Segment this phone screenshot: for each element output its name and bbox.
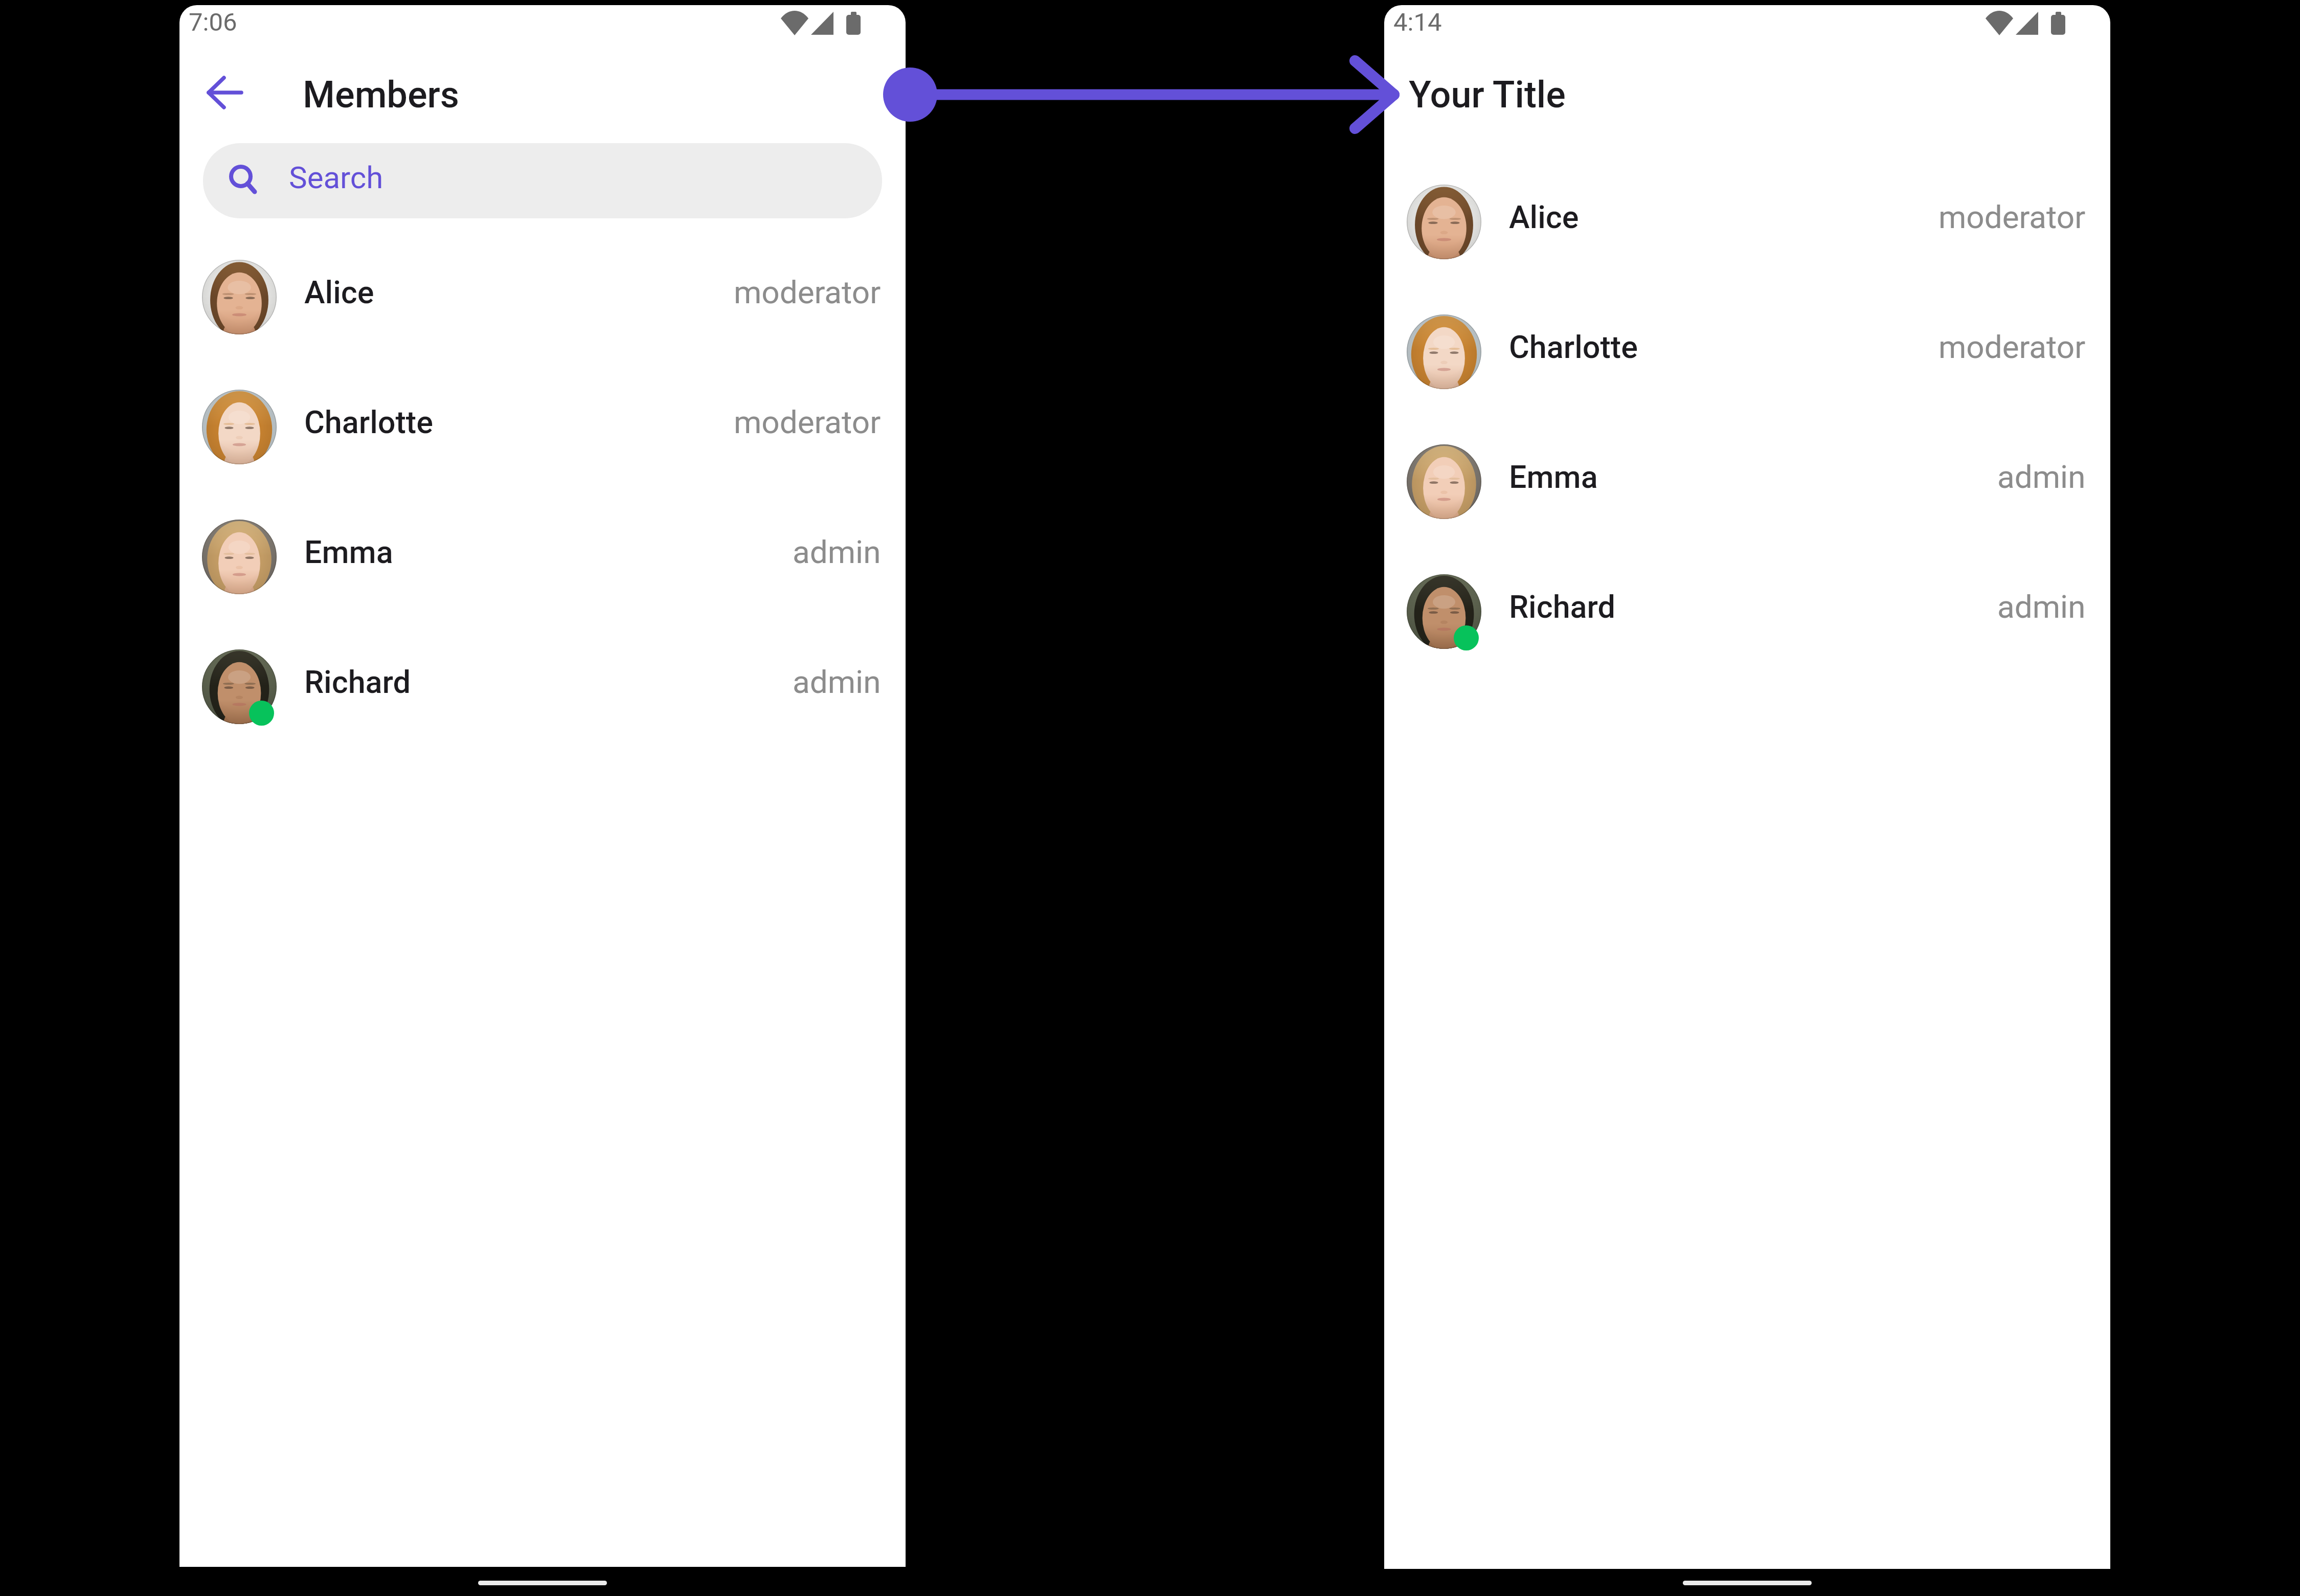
staticText: admin: [1997, 458, 2086, 496]
button[interactable]: Back: [194, 72, 256, 133]
staticText: 7:06: [189, 8, 237, 37]
staticText: Alice: [304, 274, 374, 310]
staticText: Richard: [304, 664, 411, 700]
staticText: 4:14: [1393, 8, 1442, 37]
staticText: Alice: [1509, 199, 1579, 235]
button[interactable]: Emma: [179, 492, 906, 622]
staticText: Charlotte: [1509, 329, 1638, 365]
staticText: moderator: [1938, 198, 2086, 236]
staticText: Emma: [304, 534, 393, 570]
button[interactable]: Search: [203, 143, 882, 218]
staticText: admin: [793, 533, 881, 571]
button[interactable]: Charlotte: [1384, 287, 2110, 417]
staticText: admin: [793, 663, 881, 701]
button[interactable]: Alice: [1384, 157, 2110, 287]
staticText: Charlotte: [304, 404, 433, 440]
staticText: Richard: [1509, 589, 1615, 625]
staticText: moderator: [734, 403, 881, 441]
button[interactable]: Charlotte: [179, 362, 906, 492]
staticText: Emma: [1509, 459, 1598, 495]
button[interactable]: Richard: [179, 622, 906, 752]
staticText: Your Title: [1409, 73, 1566, 116]
staticText: moderator: [734, 274, 881, 311]
button[interactable]: Alice: [179, 232, 906, 362]
staticText: Members: [303, 73, 460, 116]
staticText: moderator: [1938, 328, 2086, 366]
staticText: admin: [1997, 588, 2086, 625]
button[interactable]: Richard: [1384, 547, 2110, 677]
button[interactable]: Emma: [1384, 417, 2110, 547]
staticText: Search: [289, 160, 384, 195]
